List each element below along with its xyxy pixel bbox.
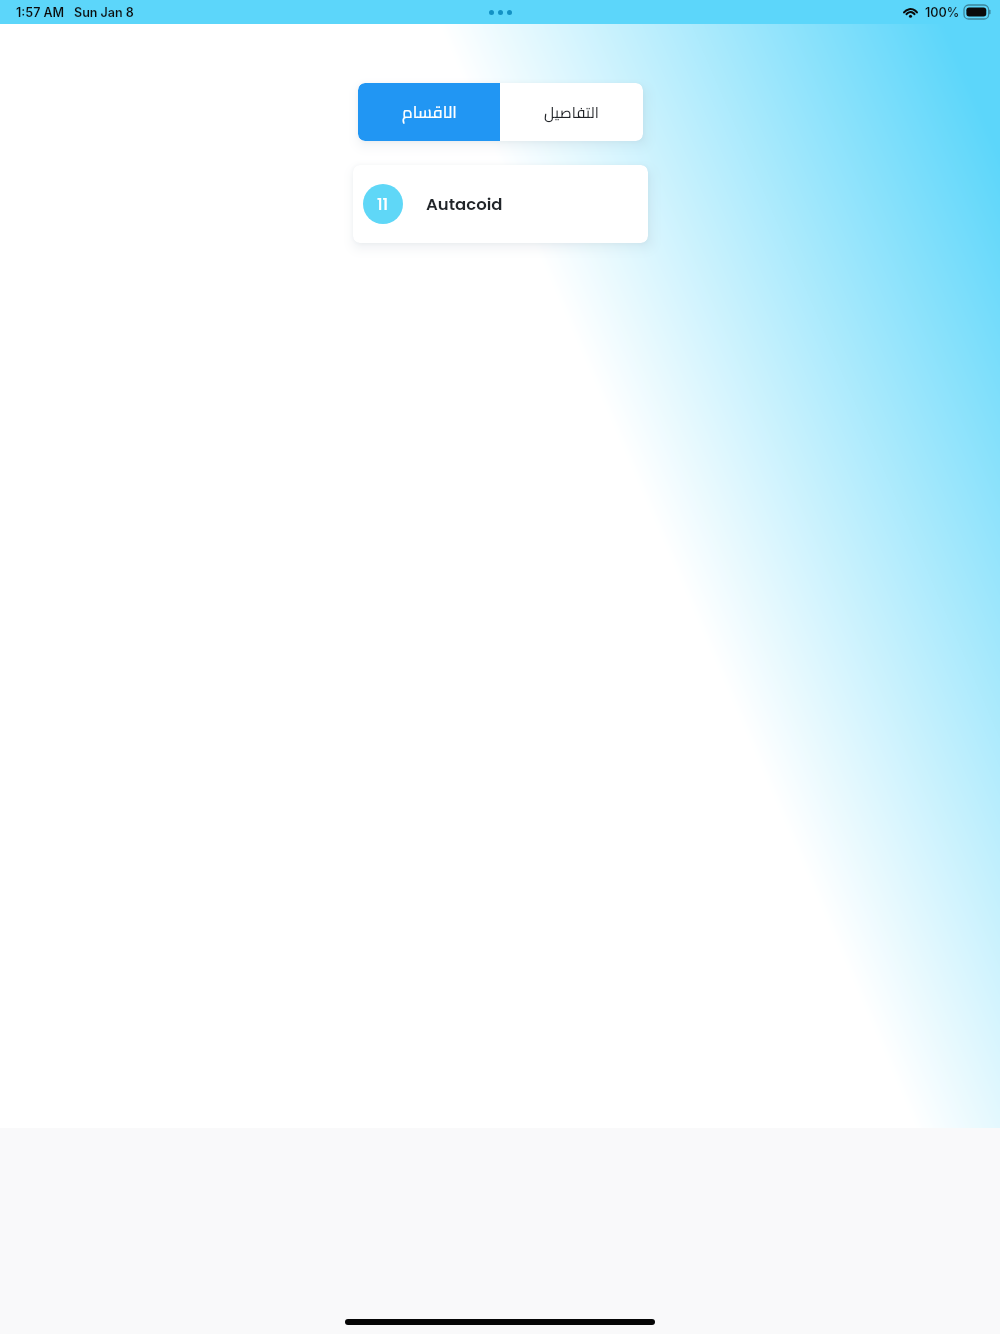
staticText: Autacoid xyxy=(426,193,503,216)
staticText: Sun Jan 8 xyxy=(74,5,134,20)
other: Battery full xyxy=(964,5,992,19)
button[interactable]: 11 xyxy=(353,165,648,243)
staticText: 11 xyxy=(377,193,389,215)
button[interactable]: التفاصيل xyxy=(500,83,643,141)
other: Wi-Fi xyxy=(902,5,919,19)
staticText: 100% xyxy=(925,5,960,20)
staticText: 1:57 AM xyxy=(16,5,65,20)
staticText: ال‍اقسام xyxy=(402,96,457,128)
staticText: التفاصيل xyxy=(544,98,599,126)
button[interactable]: ال‍اقسام xyxy=(358,83,500,141)
